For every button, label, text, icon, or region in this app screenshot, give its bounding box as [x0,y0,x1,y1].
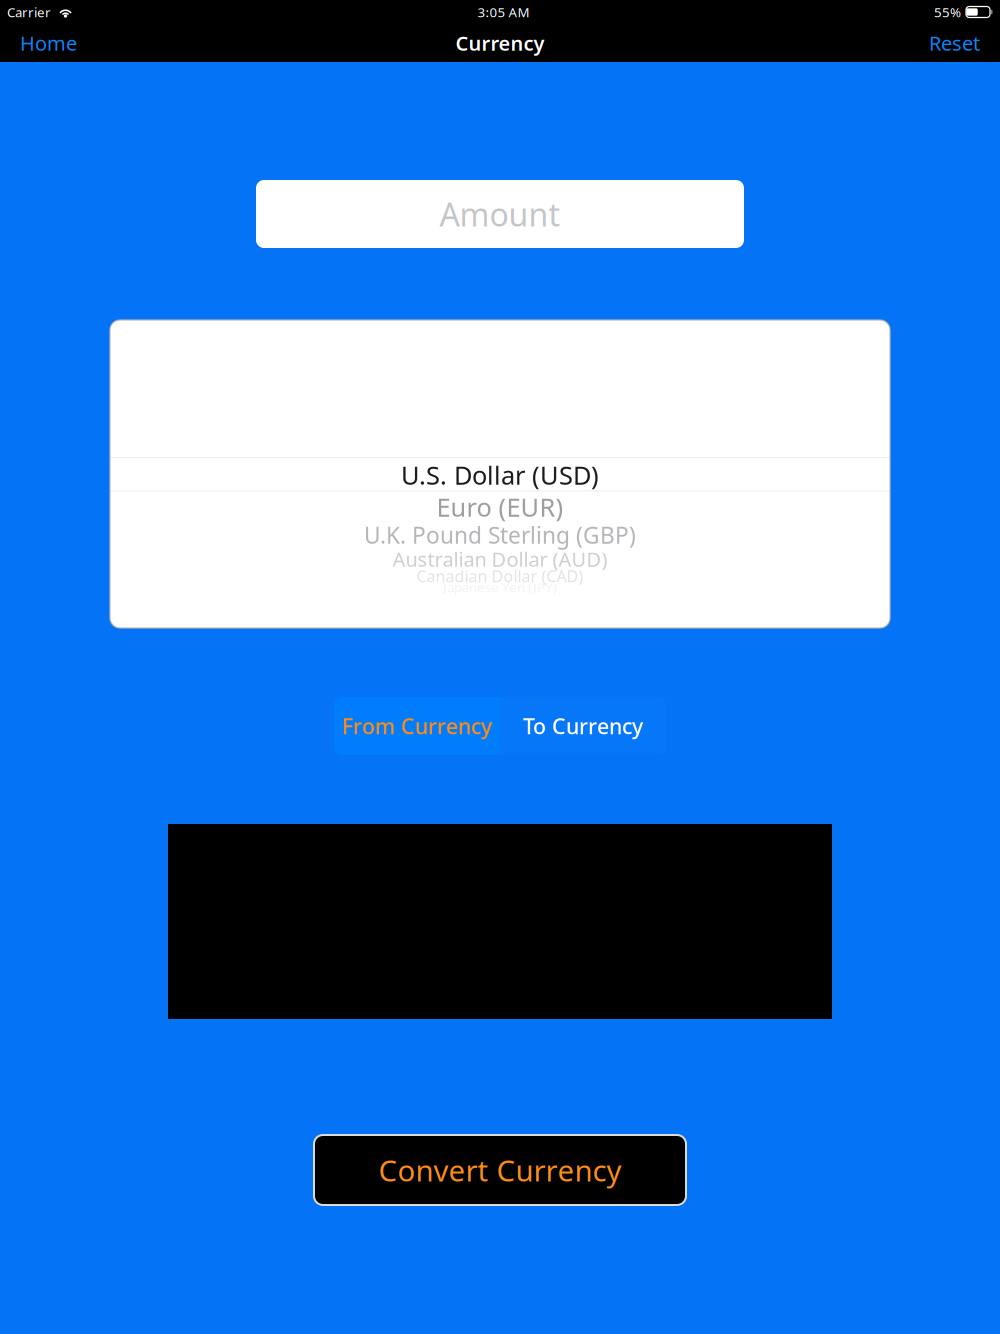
button[interactable]: Home [14,23,83,63]
staticText: Amount [439,193,560,235]
staticText: 55% [934,3,961,21]
staticText: Canadian Dollar (CAD) [416,565,583,587]
button[interactable]: Reset [923,23,986,63]
button[interactable]: Convert Currency [314,1135,686,1205]
staticText: Home [20,30,77,56]
staticText: U.S. Dollar (USD) [401,458,599,492]
button[interactable]: From Currency [334,697,500,755]
staticText: Euro (EUR) [436,490,563,524]
staticText: To Currency [523,712,643,740]
staticText: Australian Dollar (AUD) [392,546,607,572]
staticText: 3:05 AM [477,3,529,21]
button[interactable]: To Currency [500,697,666,755]
staticText: Japanese Yen (JPY) [443,578,557,596]
button[interactable]: Amount [256,180,744,248]
staticText: Currency [455,30,544,56]
staticText: From Currency [342,712,492,740]
staticText: U.K. Pound Sterling (GBP) [364,520,636,550]
staticText: Reset [929,30,980,56]
staticText: Convert Currency [378,1150,621,1189]
staticText: Carrier [7,3,51,21]
